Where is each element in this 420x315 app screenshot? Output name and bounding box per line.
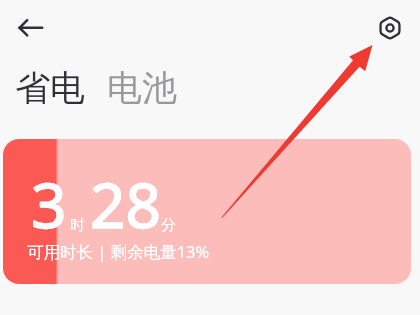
staticText: 分 xyxy=(161,216,176,235)
button[interactable]: 省电 xyxy=(13,64,85,108)
staticText: 28 xyxy=(90,162,161,246)
button[interactable]: 3 xyxy=(3,139,411,284)
staticText: 电池 xyxy=(107,66,177,110)
staticText: 可用时长 | 剩余电量13% xyxy=(27,240,210,263)
button[interactable]: Back xyxy=(8,8,48,48)
staticText: 3 xyxy=(31,162,67,246)
staticText: 省电 xyxy=(15,66,85,110)
button[interactable]: 电池 xyxy=(105,64,177,108)
staticText: 3 xyxy=(31,162,67,246)
staticText: 28 xyxy=(90,162,161,246)
staticText: 时 xyxy=(70,216,85,235)
button[interactable]: Settings xyxy=(370,8,410,48)
